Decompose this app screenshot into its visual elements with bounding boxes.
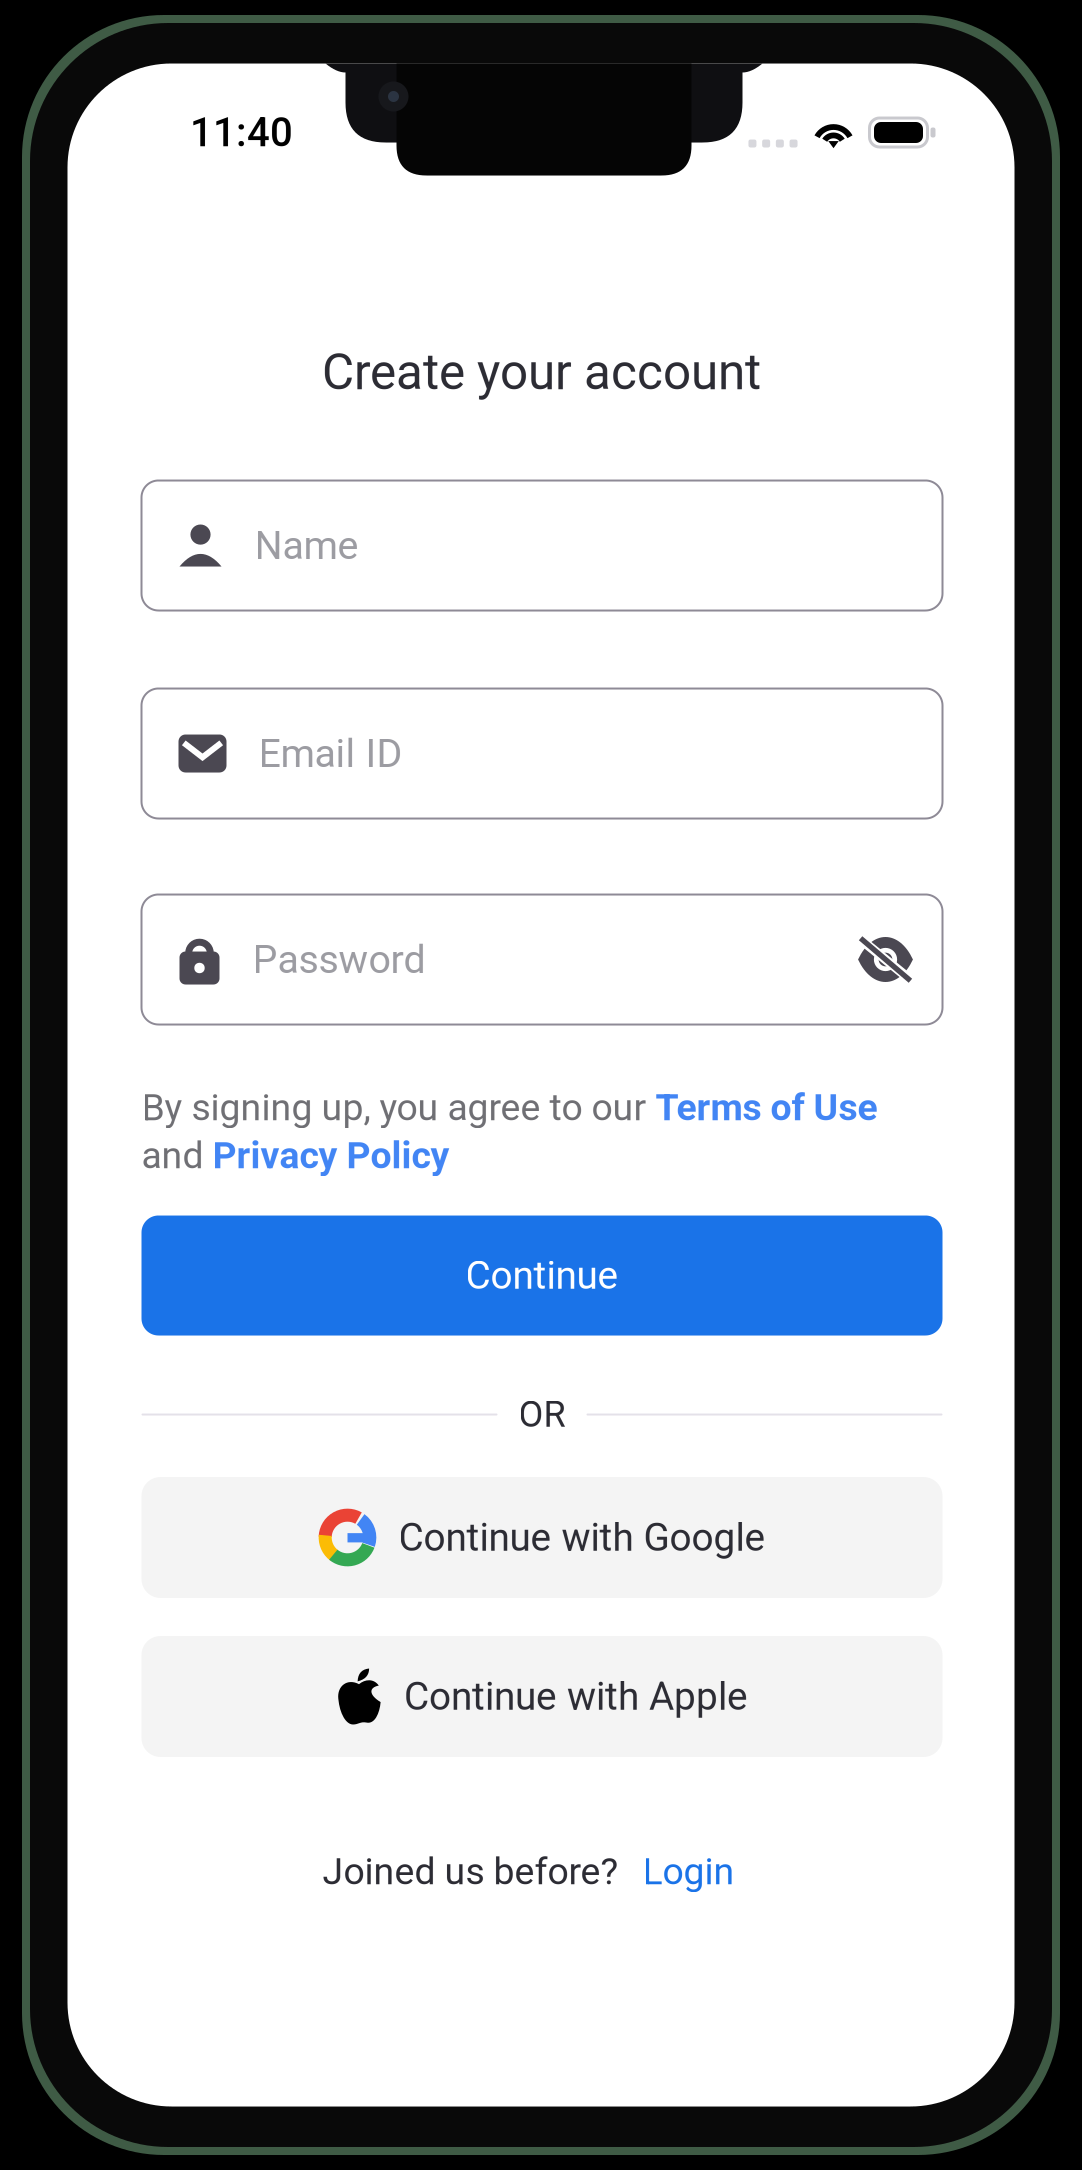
staticText: Continue with Apple: [404, 1674, 748, 1719]
staticText: Name: [254, 522, 358, 569]
staticText: 11:40: [190, 109, 293, 156]
button[interactable]: Privacy Policy: [212, 1134, 449, 1177]
staticText: Continue with Google: [398, 1515, 765, 1560]
button[interactable]: Terms of Use: [655, 1086, 877, 1129]
button[interactable]: Continue with Google: [141, 1477, 942, 1598]
staticText: Joined us before?: [322, 1850, 618, 1893]
staticText: Privacy Policy: [212, 1134, 449, 1177]
staticText: and: [141, 1134, 212, 1177]
staticText: Terms of Use: [655, 1086, 877, 1129]
staticText: Continue: [465, 1253, 618, 1298]
staticText: By signing up, you agree to our: [141, 1086, 655, 1129]
button[interactable]: Continue with Apple: [141, 1636, 942, 1757]
staticText: OR: [518, 1393, 565, 1436]
button[interactable]: Login: [618, 1850, 734, 1893]
staticText: Password: [252, 936, 425, 983]
staticText: Create your account: [322, 344, 761, 401]
staticText: Login: [642, 1850, 734, 1893]
staticText: Email ID: [258, 730, 402, 777]
button[interactable]: Continue: [141, 1215, 942, 1335]
